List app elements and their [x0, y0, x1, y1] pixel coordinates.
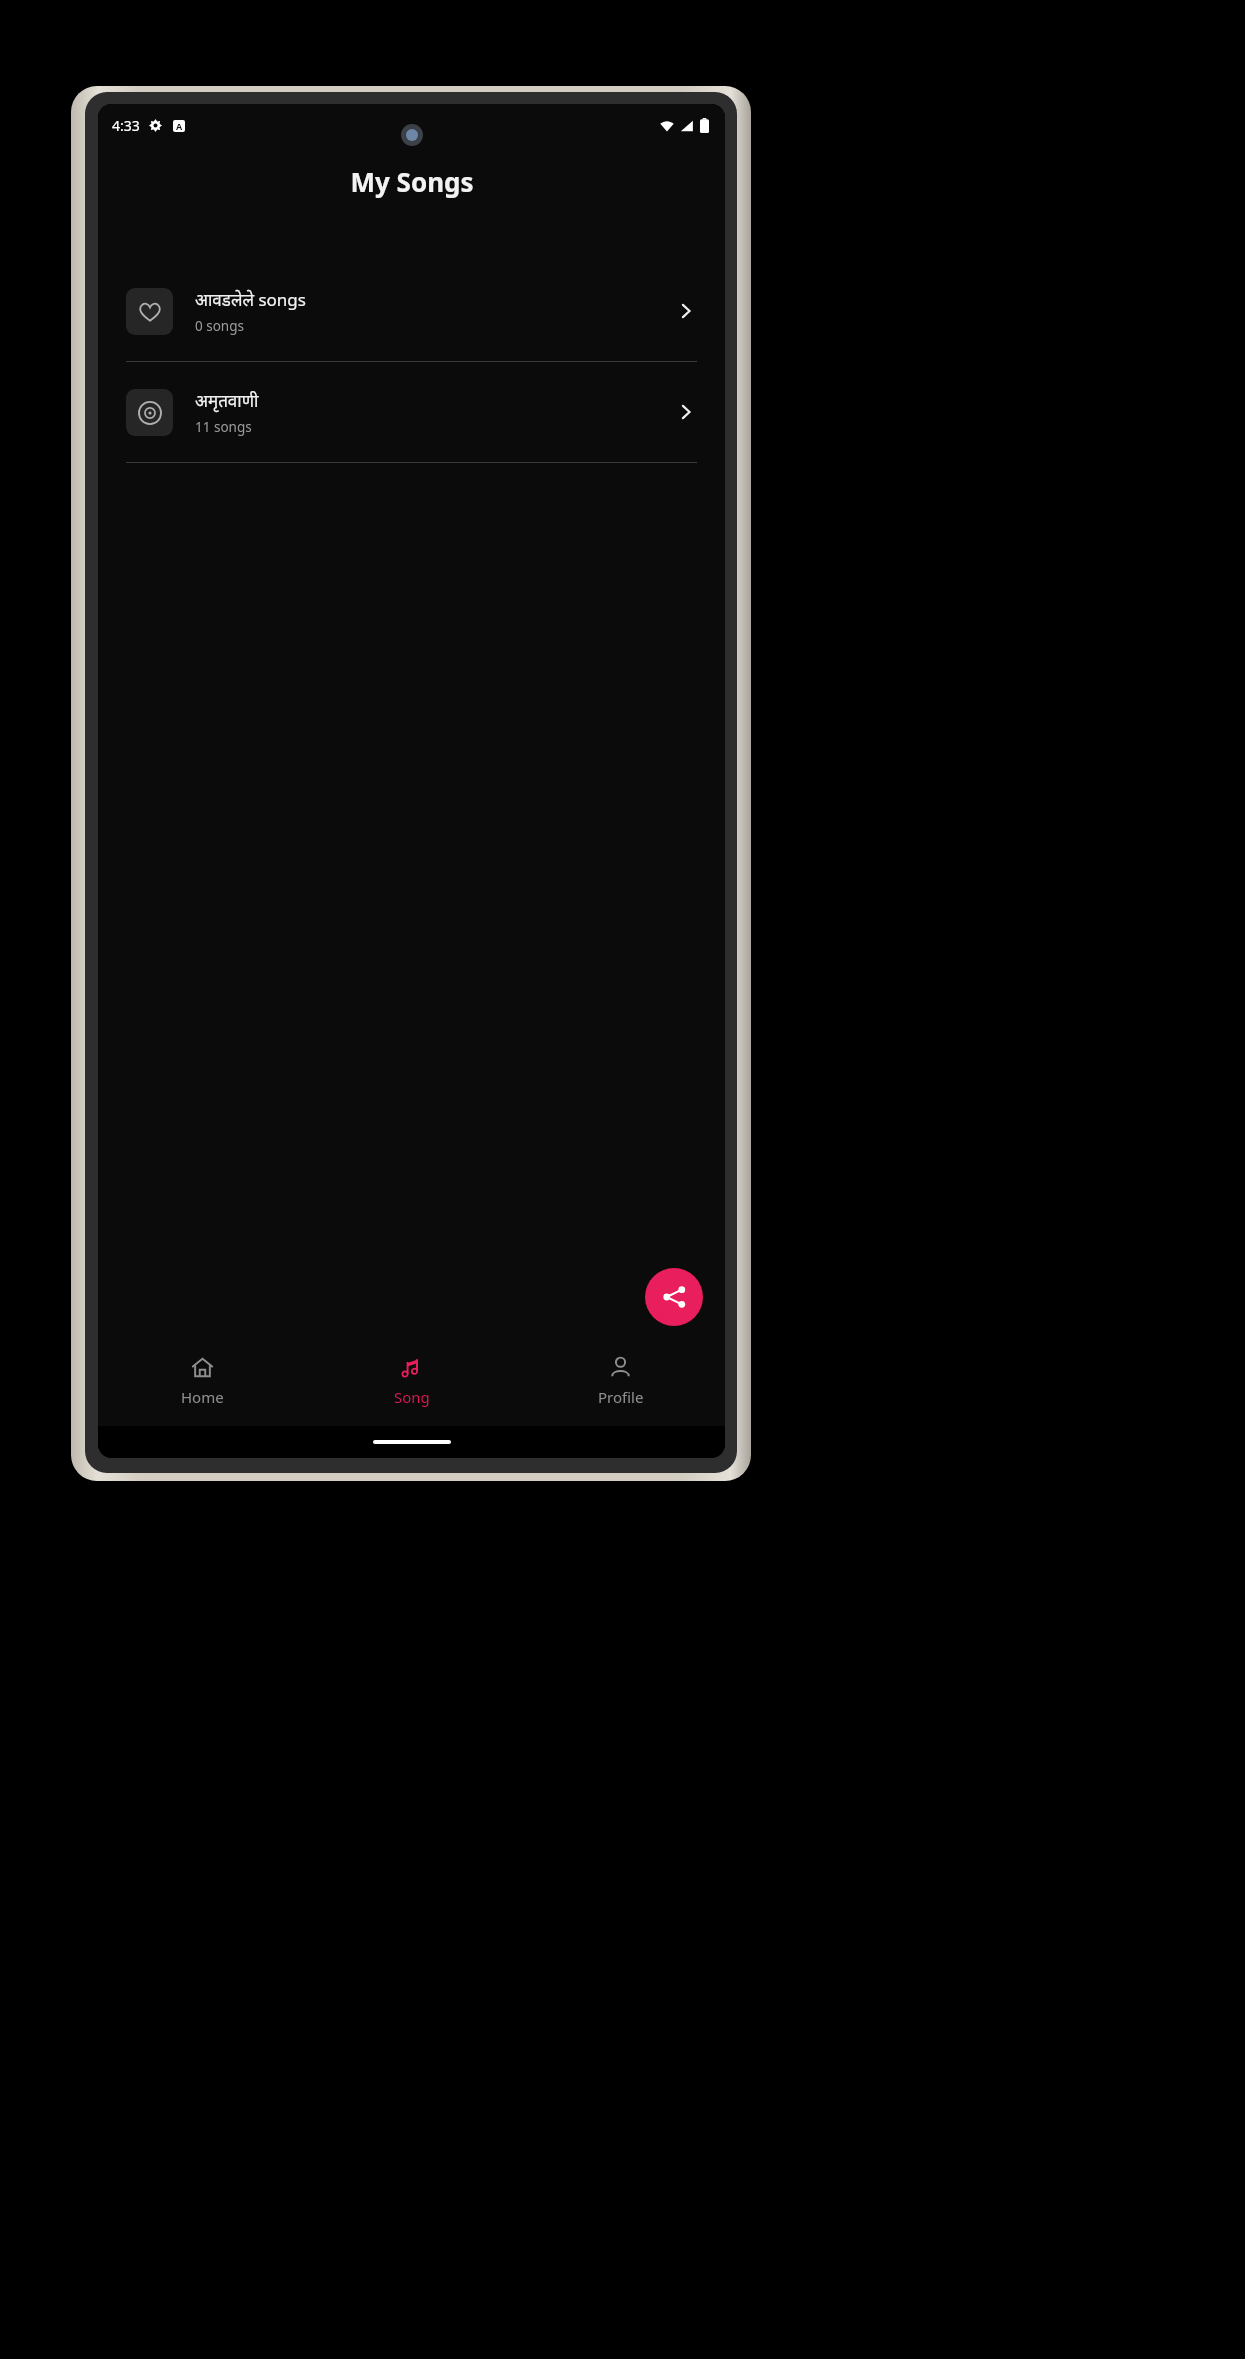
staticText: 0 songs	[195, 317, 244, 335]
staticText: A	[176, 120, 183, 132]
staticText: आवडलेले songs	[195, 288, 306, 311]
button[interactable]: आवडलेले songs	[98, 261, 725, 361]
button[interactable]: Home	[98, 1336, 307, 1426]
staticText: Profile	[598, 1387, 644, 1407]
staticText: My Songs	[350, 164, 474, 199]
staticText: 4:33	[112, 116, 140, 135]
staticText: Song	[394, 1387, 430, 1407]
button[interactable]: अमृतवाणी	[98, 362, 725, 462]
button[interactable]: Share	[645, 1268, 703, 1326]
staticText: अमृतवाणी	[195, 389, 259, 412]
button[interactable]: Song	[307, 1336, 516, 1426]
staticText: 11 songs	[195, 418, 252, 436]
staticText: Home	[181, 1387, 224, 1407]
button[interactable]: Profile	[516, 1336, 725, 1426]
